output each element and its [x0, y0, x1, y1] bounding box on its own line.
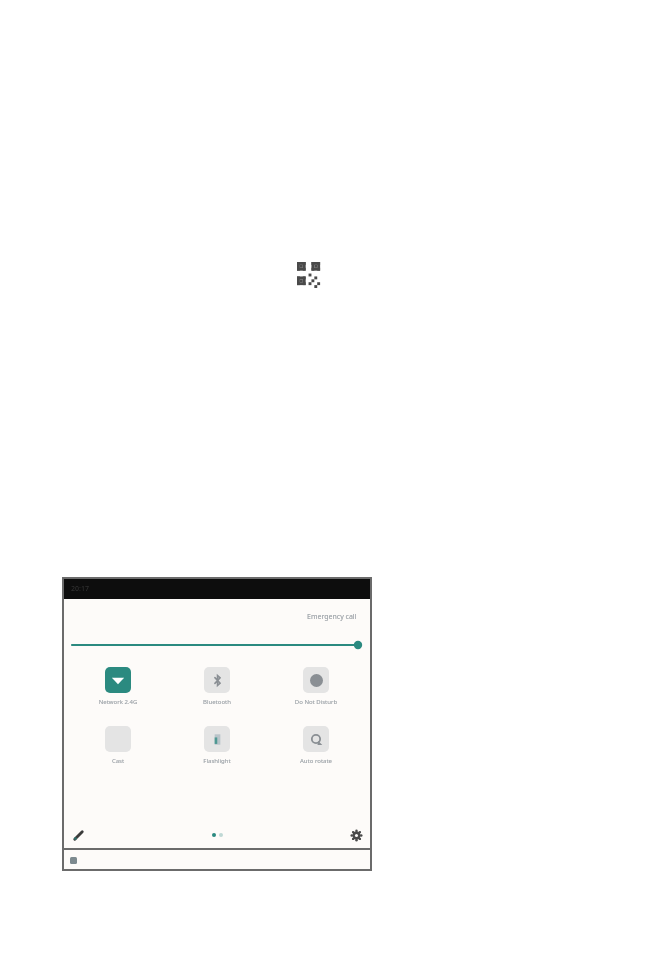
staticText: Cast [75, 757, 161, 765]
button[interactable]: Emergency call [303, 609, 361, 625]
button[interactable]: Do Not Disturb [273, 665, 359, 708]
button[interactable]: Brightness [72, 635, 362, 655]
button[interactable]: Bluetooth [174, 665, 260, 708]
button[interactable]: Settings [347, 826, 365, 844]
staticText: 20:17 [71, 584, 89, 594]
button[interactable]: Network 2.4G [75, 665, 161, 708]
staticText: Emergency call [307, 612, 357, 622]
staticText: Network 2.4G [75, 698, 161, 706]
staticText: Bluetooth [174, 698, 260, 706]
staticText: Auto rotate [273, 757, 359, 765]
button[interactable]: Cast [75, 724, 161, 767]
button[interactable]: Edit [69, 826, 87, 844]
staticText: Do Not Disturb [273, 698, 359, 706]
button[interactable]: Auto rotate [273, 724, 359, 767]
button[interactable]: Flashlight [174, 724, 260, 767]
button[interactable]: QR code [297, 262, 323, 288]
staticText: Flashlight [174, 757, 260, 765]
